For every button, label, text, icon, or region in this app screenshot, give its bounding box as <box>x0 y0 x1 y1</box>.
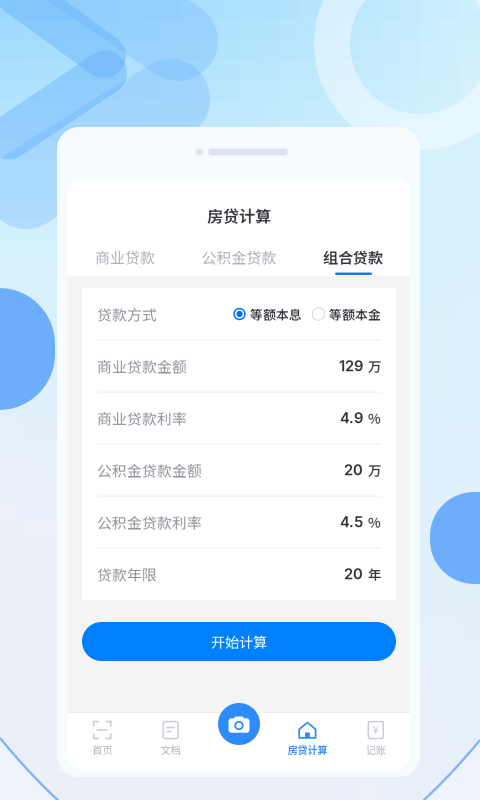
staticText: 万 <box>368 460 381 480</box>
button[interactable]: 公积金贷款 <box>182 246 296 268</box>
button[interactable]: Camera <box>218 703 260 745</box>
staticText: 129 <box>339 357 363 375</box>
button[interactable]: 组合贷款 <box>296 246 410 268</box>
button[interactable]: 文档 <box>136 713 205 757</box>
button[interactable]: 首页 <box>68 713 136 757</box>
staticText: 首页 <box>92 742 112 757</box>
staticText: 房贷计算 <box>207 204 271 227</box>
staticText: 商业贷款金额 <box>97 355 187 377</box>
button[interactable]: 等额本息 <box>233 305 302 323</box>
button[interactable]: 开始计算 <box>82 622 396 661</box>
staticText: 万 <box>368 356 381 376</box>
staticText: 20 <box>344 461 363 479</box>
staticText: 记账 <box>366 742 386 757</box>
staticText: 年 <box>368 564 381 584</box>
staticText: 房贷计算 <box>287 742 327 757</box>
staticText: 贷款年限 <box>97 563 157 585</box>
staticText: ¥ <box>373 724 379 736</box>
staticText: 公积金贷款利率 <box>97 511 202 533</box>
staticText: 等额本金 <box>329 305 381 323</box>
staticText: 组合贷款 <box>323 246 383 268</box>
staticText: % <box>368 408 381 428</box>
button[interactable]: 房贷计算 <box>273 713 342 757</box>
staticText: 4.5 <box>340 513 363 531</box>
staticText: 公积金贷款 <box>201 246 276 268</box>
staticText: 4.9 <box>340 409 363 427</box>
staticText: 开始计算 <box>211 631 267 652</box>
button[interactable]: 等额本金 <box>302 305 381 323</box>
button[interactable]: 商业贷款 <box>68 246 182 268</box>
staticText: 商业贷款利率 <box>97 407 187 429</box>
staticText: 商业贷款 <box>95 246 155 268</box>
staticText: 等额本息 <box>250 305 302 323</box>
button[interactable]: ¥ <box>342 713 410 757</box>
staticText: 贷款方式 <box>97 303 157 325</box>
staticText: 20 <box>344 565 363 583</box>
staticText: % <box>368 512 381 532</box>
staticText: 文档 <box>161 742 181 757</box>
staticText: 公积金贷款金额 <box>97 459 202 481</box>
